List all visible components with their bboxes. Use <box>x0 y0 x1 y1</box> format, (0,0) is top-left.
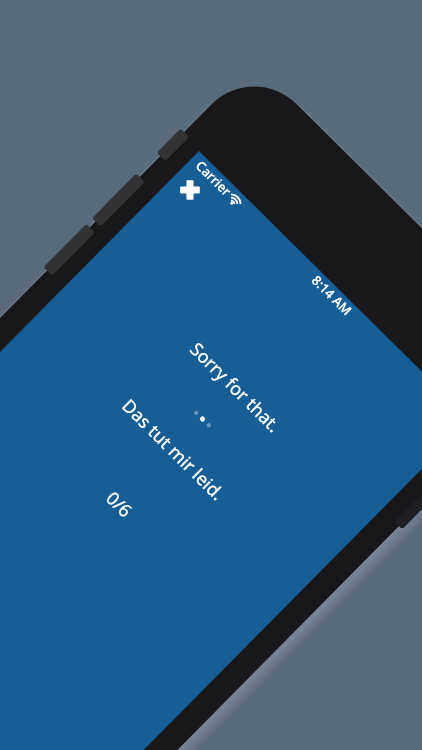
button[interactable]: Sorry for that. Das tut mir leid. 0/6 <box>0 0 422 750</box>
